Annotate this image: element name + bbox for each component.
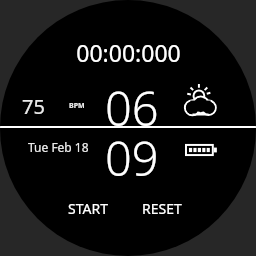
button[interactable]: 00:00:000 [76,37,181,68]
button[interactable]: Weather, partly cloudy [182,84,218,120]
staticText: RESET [142,199,182,218]
button[interactable]: START [56,195,120,221]
button[interactable]: Battery level [185,139,221,161]
staticText: 06 [105,76,159,140]
staticText: Tue Feb 18 [28,139,89,155]
staticText: BPM [69,101,85,111]
staticText: 75 [22,93,45,120]
staticText: START [68,199,108,218]
button[interactable]: RESET [130,195,194,221]
staticText: 09 [105,126,159,190]
